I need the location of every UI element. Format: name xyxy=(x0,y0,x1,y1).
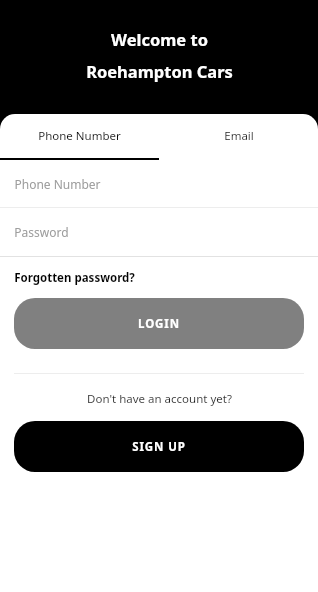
button[interactable]: Phone Number xyxy=(0,114,159,158)
button[interactable]: Email xyxy=(159,114,318,158)
staticText: Roehampton Cars xyxy=(86,60,233,82)
staticText: Password xyxy=(14,224,69,240)
staticText: Phone Number xyxy=(14,176,101,192)
staticText: LOGIN xyxy=(138,316,180,332)
staticText: SIGN UP xyxy=(132,439,186,455)
staticText: Don't have an account yet? xyxy=(87,391,232,407)
button[interactable]: LOGIN xyxy=(14,298,304,349)
button[interactable]: Phone Number xyxy=(0,160,318,207)
staticText: Phone Number xyxy=(38,128,121,144)
staticText: Forgotten password? xyxy=(14,270,135,286)
staticText: Welcome to xyxy=(111,28,208,50)
staticText: Email xyxy=(224,128,254,144)
button[interactable]: SIGN UP xyxy=(14,421,304,472)
button[interactable]: Forgotten password? xyxy=(0,257,149,298)
button[interactable]: Password xyxy=(0,208,318,256)
